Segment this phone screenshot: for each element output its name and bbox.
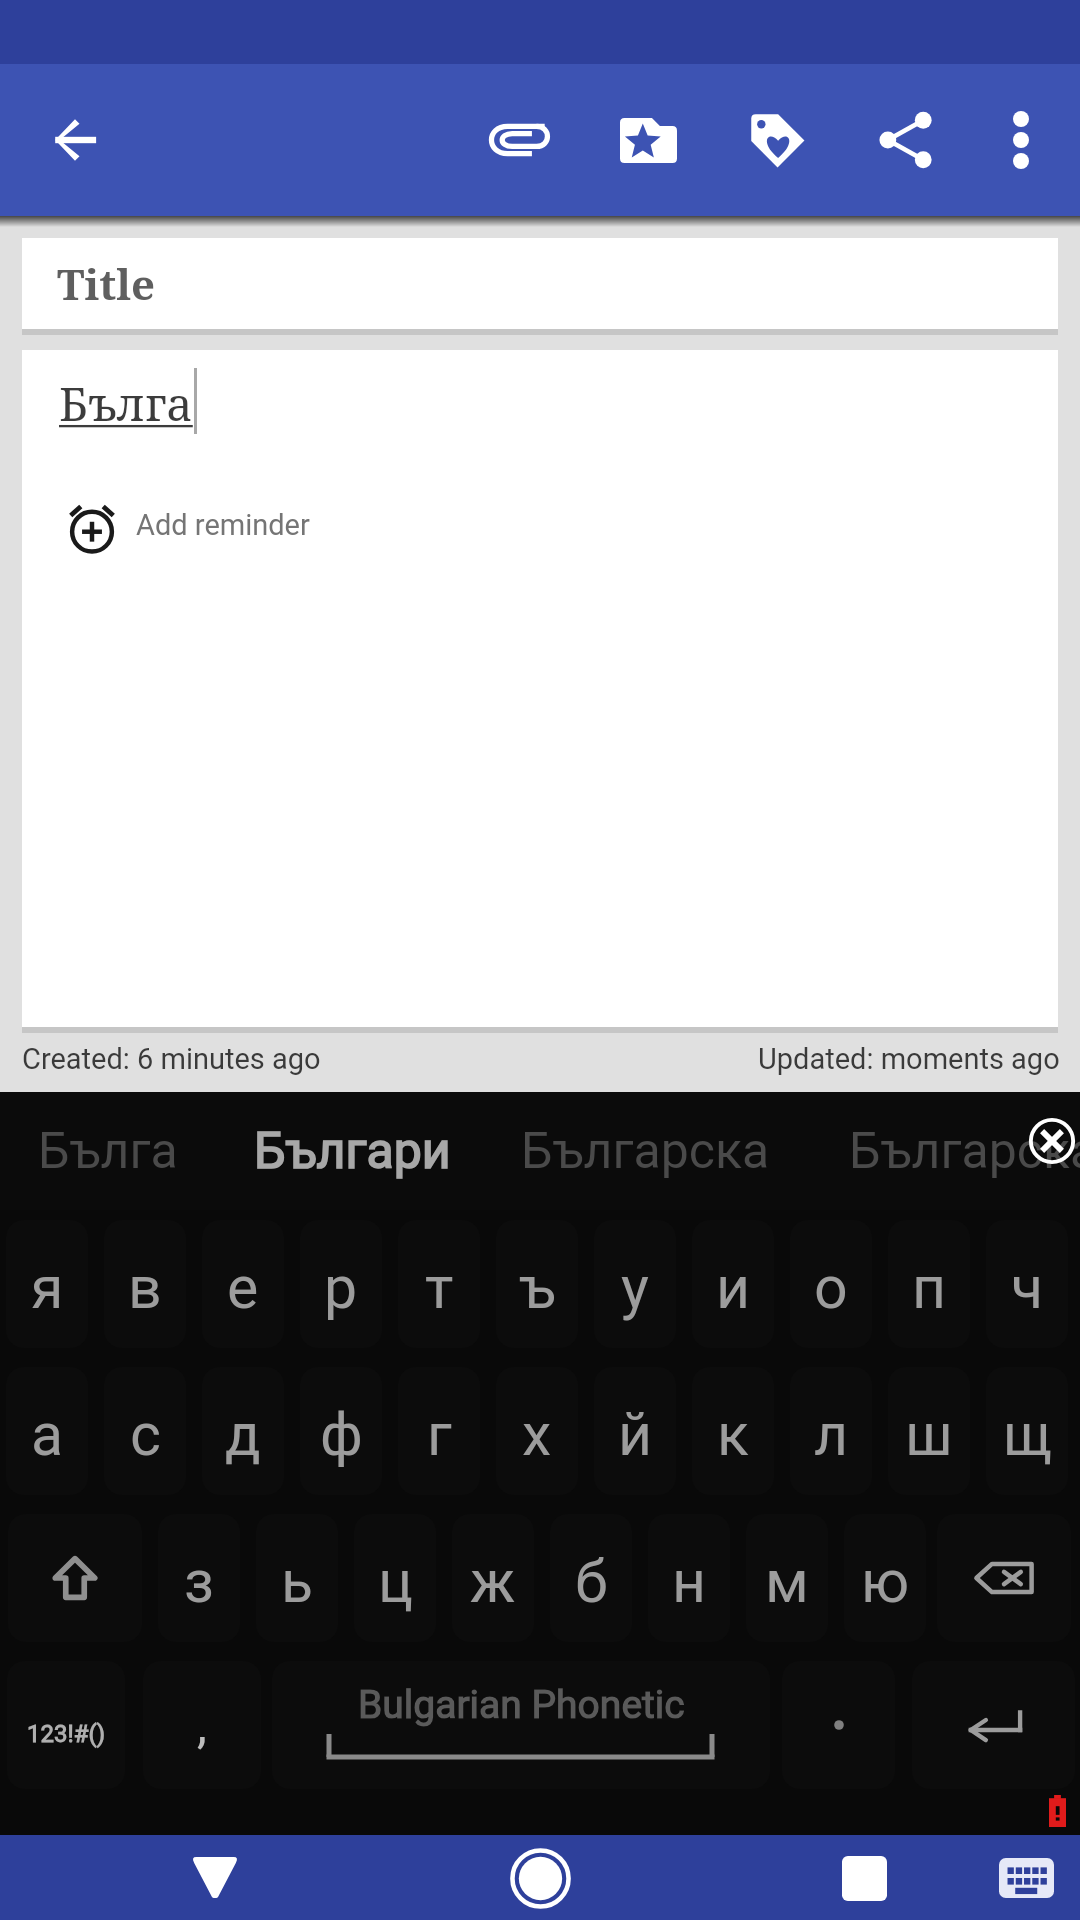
staticText: ф [320, 1400, 363, 1469]
staticText: 123!#() [27, 1720, 105, 1748]
staticText: к [717, 1400, 749, 1469]
staticText: ъ [519, 1253, 556, 1322]
button[interactable]: с [104, 1367, 186, 1495]
staticText: Българи [254, 1122, 451, 1181]
staticText: й [618, 1400, 653, 1469]
button[interactable]: п [888, 1220, 970, 1348]
staticText: Българска [521, 1122, 770, 1181]
button[interactable]: щ [986, 1367, 1068, 1495]
staticText: и [716, 1253, 751, 1322]
button[interactable]: Българска [849, 1092, 1080, 1210]
button[interactable]: т [398, 1220, 480, 1348]
button[interactable]: г [398, 1367, 480, 1495]
button[interactable]: Symbols [7, 1661, 125, 1789]
button[interactable]: Home [499, 1837, 581, 1919]
staticText: ь [281, 1547, 314, 1616]
staticText: Бълга [38, 1122, 178, 1181]
staticText: т [425, 1253, 454, 1322]
staticText: б [575, 1547, 608, 1616]
staticText: н [672, 1547, 707, 1616]
staticText: ж [470, 1547, 516, 1616]
button[interactable]: х [496, 1367, 578, 1495]
button[interactable]: Delete [937, 1514, 1071, 1642]
button[interactable]: Add reminder [64, 497, 310, 553]
button[interactable]: ж [452, 1514, 534, 1642]
button[interactable]: Title [22, 238, 1058, 329]
staticText: ч [1011, 1253, 1044, 1322]
staticText: у [621, 1253, 649, 1322]
button[interactable]: е [202, 1220, 284, 1348]
button[interactable]: Shift [8, 1514, 142, 1642]
button[interactable]: б [550, 1514, 632, 1642]
button[interactable]: Attach file [468, 90, 568, 190]
staticText: щ [1003, 1400, 1052, 1469]
button[interactable]: л [790, 1367, 872, 1495]
button[interactable]: н [648, 1514, 730, 1642]
staticText: м [765, 1547, 809, 1616]
button[interactable]: в [104, 1220, 186, 1348]
button[interactable]: ц [354, 1514, 436, 1642]
button[interactable]: ъ [496, 1220, 578, 1348]
staticText: Title [57, 255, 156, 312]
button[interactable]: More options [971, 90, 1071, 190]
staticText: Българска [849, 1122, 1080, 1181]
button[interactable]: к [692, 1367, 774, 1495]
staticText: л [814, 1400, 849, 1469]
button[interactable]: ч [986, 1220, 1068, 1348]
staticText: х [522, 1400, 552, 1469]
button[interactable]: Бълга [22, 350, 1058, 1027]
staticText: Created: 6 minutes ago [22, 1042, 321, 1076]
button[interactable]: я [6, 1220, 88, 1348]
staticText: Add reminder [136, 508, 310, 542]
staticText: р [324, 1253, 358, 1322]
button[interactable]: Enter [912, 1661, 1075, 1789]
button[interactable]: Space [272, 1661, 770, 1789]
staticText: я [31, 1253, 64, 1322]
button[interactable]: Close suggestions [1024, 1113, 1080, 1169]
staticText: Bulgarian Phonetic [358, 1682, 685, 1728]
button[interactable]: Change keyboard [985, 1837, 1067, 1919]
staticText: ш [905, 1400, 953, 1469]
button[interactable]: Back [174, 1837, 256, 1919]
button[interactable]: з [158, 1514, 240, 1642]
button[interactable]: Бълга [0, 1092, 238, 1210]
staticText: г [427, 1400, 452, 1469]
staticText: Updated: moments ago [758, 1042, 1060, 1076]
button[interactable]: ь [256, 1514, 338, 1642]
button[interactable]: Comma [143, 1661, 261, 1789]
staticText: д [225, 1400, 261, 1469]
button[interactable]: Notebook [598, 90, 698, 190]
button[interactable]: у [594, 1220, 676, 1348]
staticText: ц [378, 1547, 413, 1616]
button[interactable]: м [746, 1514, 828, 1642]
staticText: е [227, 1253, 259, 1322]
button[interactable]: ю [844, 1514, 926, 1642]
button[interactable]: й [594, 1367, 676, 1495]
button[interactable]: Recent apps [823, 1837, 905, 1919]
button[interactable]: Navigate up [25, 90, 125, 190]
button[interactable]: ш [888, 1367, 970, 1495]
button[interactable]: о [790, 1220, 872, 1348]
button[interactable]: ф [300, 1367, 382, 1495]
staticText: з [184, 1547, 214, 1616]
staticText: а [31, 1400, 64, 1469]
staticText: о [814, 1253, 848, 1322]
button[interactable]: Labels [727, 90, 827, 190]
staticText: Бълга [59, 372, 193, 435]
button[interactable]: Българска [515, 1092, 775, 1210]
button[interactable]: Българи [222, 1092, 482, 1210]
staticText: в [128, 1253, 162, 1322]
staticText: , [197, 1696, 207, 1755]
staticText: п [912, 1253, 947, 1322]
staticText: ю [861, 1547, 910, 1616]
staticText: с [130, 1400, 161, 1469]
button[interactable]: р [300, 1220, 382, 1348]
button[interactable]: Period [782, 1661, 895, 1789]
button[interactable]: д [202, 1367, 284, 1495]
button[interactable]: Share [857, 90, 957, 190]
button[interactable]: а [6, 1367, 88, 1495]
button[interactable]: и [692, 1220, 774, 1348]
